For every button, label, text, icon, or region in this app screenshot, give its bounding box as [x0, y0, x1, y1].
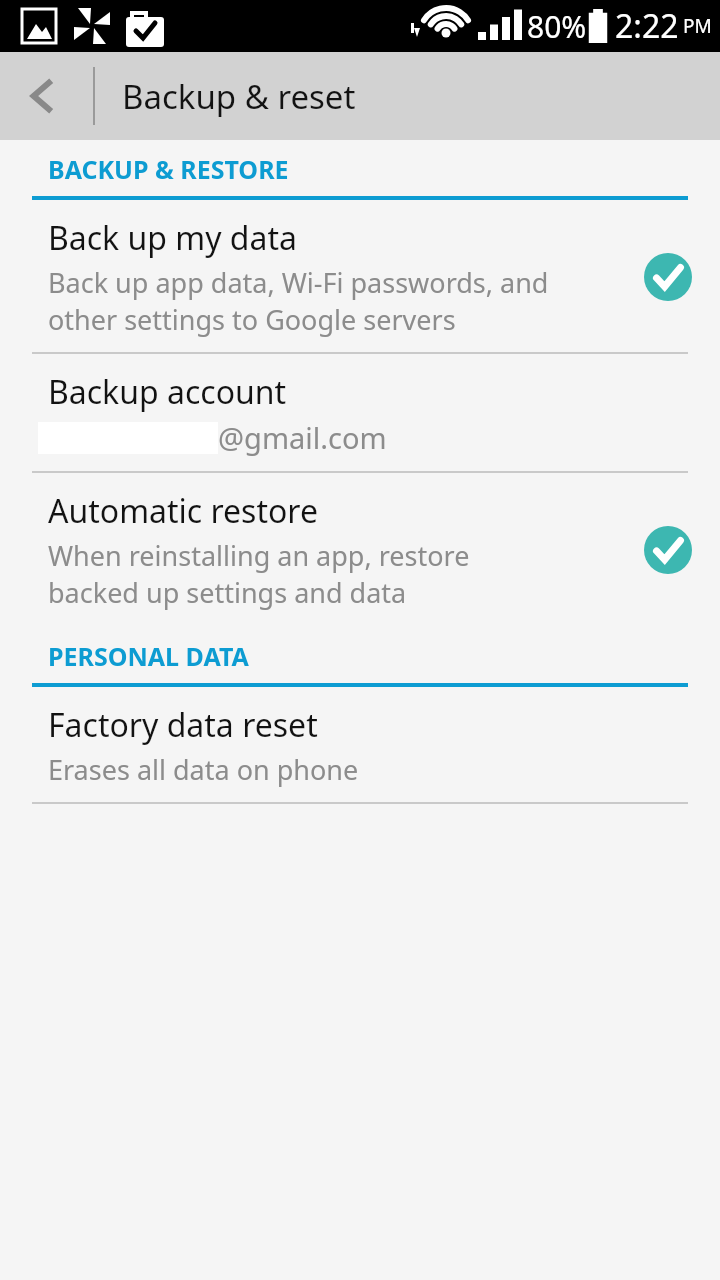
- button[interactable]: Toggle Automatic restore: [640, 522, 696, 578]
- staticText: 2:22: [615, 4, 679, 48]
- staticText: @gmail.com: [218, 418, 387, 457]
- staticText: other settings to Google servers: [48, 301, 456, 338]
- staticText: Backup & reset: [122, 74, 356, 119]
- staticText: backed up settings and data: [48, 574, 407, 611]
- button[interactable]: Backup account: [0, 354, 720, 473]
- staticText: Automatic restore: [48, 489, 318, 533]
- staticText: PM: [683, 13, 712, 39]
- staticText: Erases all data on phone: [48, 751, 359, 788]
- staticText: Back up my data: [48, 216, 297, 260]
- button[interactable]: Back up my data: [0, 200, 720, 354]
- staticText: PERSONAL DATA: [48, 639, 249, 673]
- button[interactable]: Toggle Back up my data: [640, 249, 696, 305]
- button[interactable]: Factory data reset: [0, 687, 720, 804]
- staticText: Back up app data, Wi-Fi passwords, and: [48, 264, 549, 301]
- button[interactable]: Automatic restore: [0, 473, 720, 625]
- staticText: When reinstalling an app, restore: [48, 537, 470, 574]
- staticText: 80%: [527, 6, 587, 47]
- button[interactable]: Back: [0, 52, 88, 140]
- staticText: Factory data reset: [48, 703, 318, 747]
- staticText: BACKUP & RESTORE: [48, 152, 289, 186]
- staticText: Backup account: [48, 370, 287, 414]
